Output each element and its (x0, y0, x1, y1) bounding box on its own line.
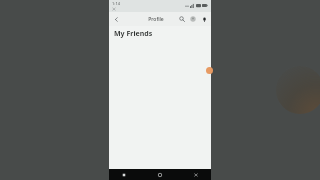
button[interactable]: Recents (191, 170, 201, 180)
button[interactable]: Back (111, 14, 122, 25)
staticText: Profile (148, 16, 164, 23)
staticText: 1:14 (112, 1, 120, 6)
button[interactable]: Back (119, 170, 129, 180)
button[interactable]: Home (155, 170, 165, 180)
button[interactable]: Notifications (199, 14, 209, 24)
button[interactable]: Friend avatar (206, 67, 213, 74)
staticText: My Friends (114, 29, 153, 39)
button[interactable]: Account (188, 14, 198, 24)
button[interactable]: Search (177, 14, 187, 24)
